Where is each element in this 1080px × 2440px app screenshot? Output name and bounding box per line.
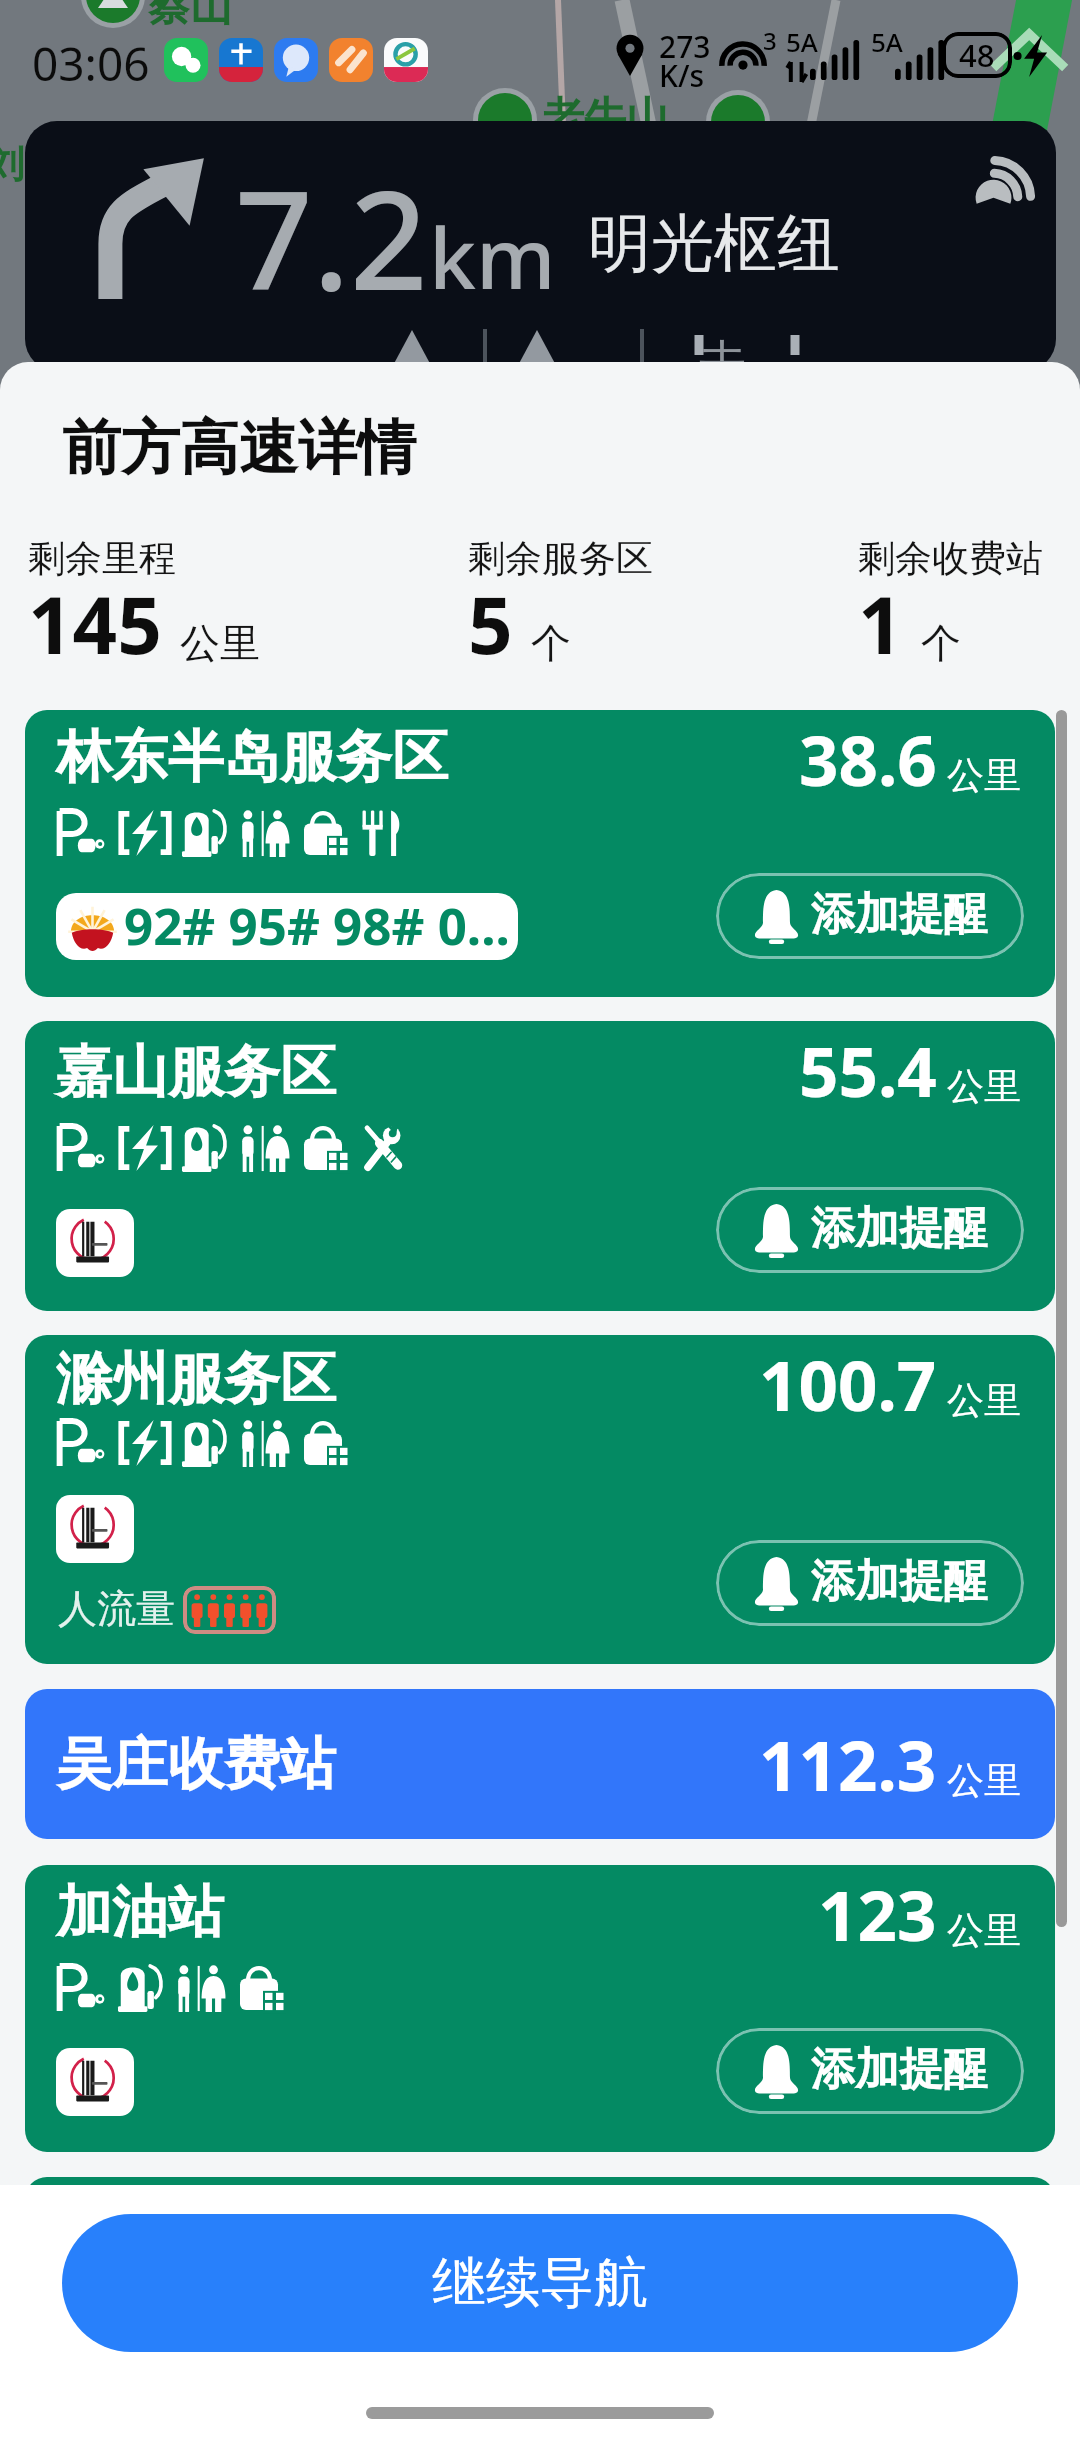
staticText: 3	[763, 24, 777, 57]
staticText: 38.6	[799, 712, 937, 806]
staticText: 公里	[947, 1757, 1021, 1804]
staticText: 公里	[947, 1907, 1021, 1954]
staticText: 滁州服务区	[56, 1344, 336, 1415]
button[interactable]: 滁州服务区	[25, 1335, 1055, 1664]
staticText: 公里	[947, 1377, 1021, 1424]
staticText: 未	[697, 333, 747, 371]
button[interactable]: 加油站	[25, 1865, 1055, 2152]
staticText: 加油站	[56, 1877, 224, 1948]
staticText: 林东半岛服务区	[56, 722, 448, 793]
button[interactable]: 添加提醒	[716, 873, 1024, 959]
staticText: 100.7	[759, 1337, 937, 1431]
staticText: 老牛山	[542, 92, 668, 145]
staticText: 明光枢纽	[588, 204, 840, 283]
staticText: 个	[921, 618, 961, 668]
staticText: 5A	[871, 24, 903, 59]
staticText: 个	[531, 618, 571, 668]
staticText: 添加提醒	[811, 1554, 987, 1609]
staticText: 人流量	[58, 1584, 175, 1633]
staticText: 添加提醒	[811, 2042, 987, 2097]
button[interactable]: 添加提醒	[716, 2028, 1024, 2114]
staticText: 添加提醒	[811, 1201, 987, 1256]
staticText: 5A	[786, 24, 818, 59]
staticText: 7.2	[235, 145, 428, 330]
staticText: 123	[818, 1867, 937, 1961]
button[interactable]: 林东半岛服务区	[25, 710, 1055, 997]
button[interactable]: 添加提醒	[716, 1187, 1024, 1273]
staticText: 55.4	[799, 1023, 937, 1117]
staticText: 公里	[947, 752, 1021, 799]
staticText: 03:06	[32, 32, 150, 95]
staticText: 添加提醒	[811, 887, 987, 942]
button[interactable]: 吴庄收费站	[25, 1689, 1055, 1839]
button[interactable]: 嘉山服务区	[25, 1021, 1055, 1311]
staticText: km	[429, 199, 556, 313]
staticText: 273	[659, 26, 711, 67]
staticText: 112.3	[759, 1717, 937, 1811]
staticText: 前方高速详情	[62, 411, 416, 485]
staticText: 剩余服务区	[468, 535, 653, 582]
staticText: 48	[959, 34, 995, 76]
staticText: 1	[858, 571, 903, 677]
staticText: 吴庄收费站	[56, 1729, 336, 1800]
staticText: 92# 95# 98# 0...	[124, 893, 510, 957]
staticText: 公里	[180, 618, 260, 668]
staticText: 继续导航	[432, 2249, 648, 2317]
staticText: 剩余收费站	[858, 535, 1043, 582]
staticText: 5	[468, 571, 513, 677]
button[interactable]: 继续导航	[62, 2214, 1018, 2352]
staticText: 公里	[947, 1063, 1021, 1110]
button[interactable]: 添加提醒	[716, 1540, 1024, 1626]
staticText: 蔡山	[148, 0, 232, 33]
staticText: 刘	[0, 140, 24, 188]
staticText: K/s	[659, 55, 705, 96]
staticText: 145	[28, 571, 162, 677]
other: Broadcast	[973, 149, 1037, 213]
staticText: 剩余里程	[28, 535, 176, 582]
staticText: 嘉山服务区	[56, 1037, 336, 1108]
